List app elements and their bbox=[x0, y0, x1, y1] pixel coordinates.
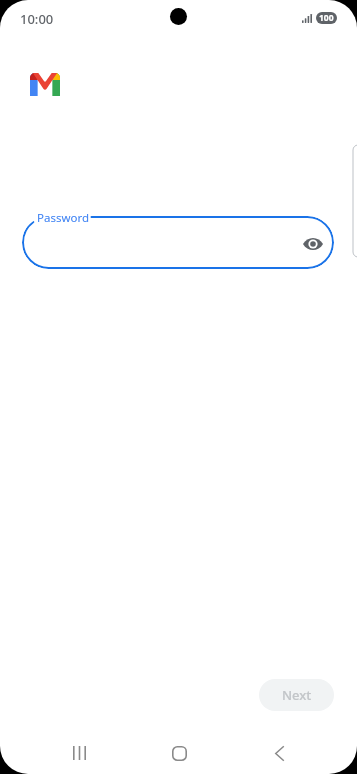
staticText: 10:00 bbox=[20, 10, 54, 28]
button[interactable]: Next bbox=[259, 679, 334, 711]
button[interactable]: Show password bbox=[22, 216, 334, 269]
button[interactable]: Recent apps bbox=[56, 738, 102, 768]
button[interactable]: Show password bbox=[293, 224, 333, 264]
staticText: Next bbox=[282, 686, 312, 704]
staticText: 100 bbox=[319, 12, 334, 24]
button[interactable]: Home bbox=[157, 738, 202, 768]
button[interactable]: Back bbox=[257, 738, 302, 768]
staticText: Password bbox=[37, 210, 90, 226]
